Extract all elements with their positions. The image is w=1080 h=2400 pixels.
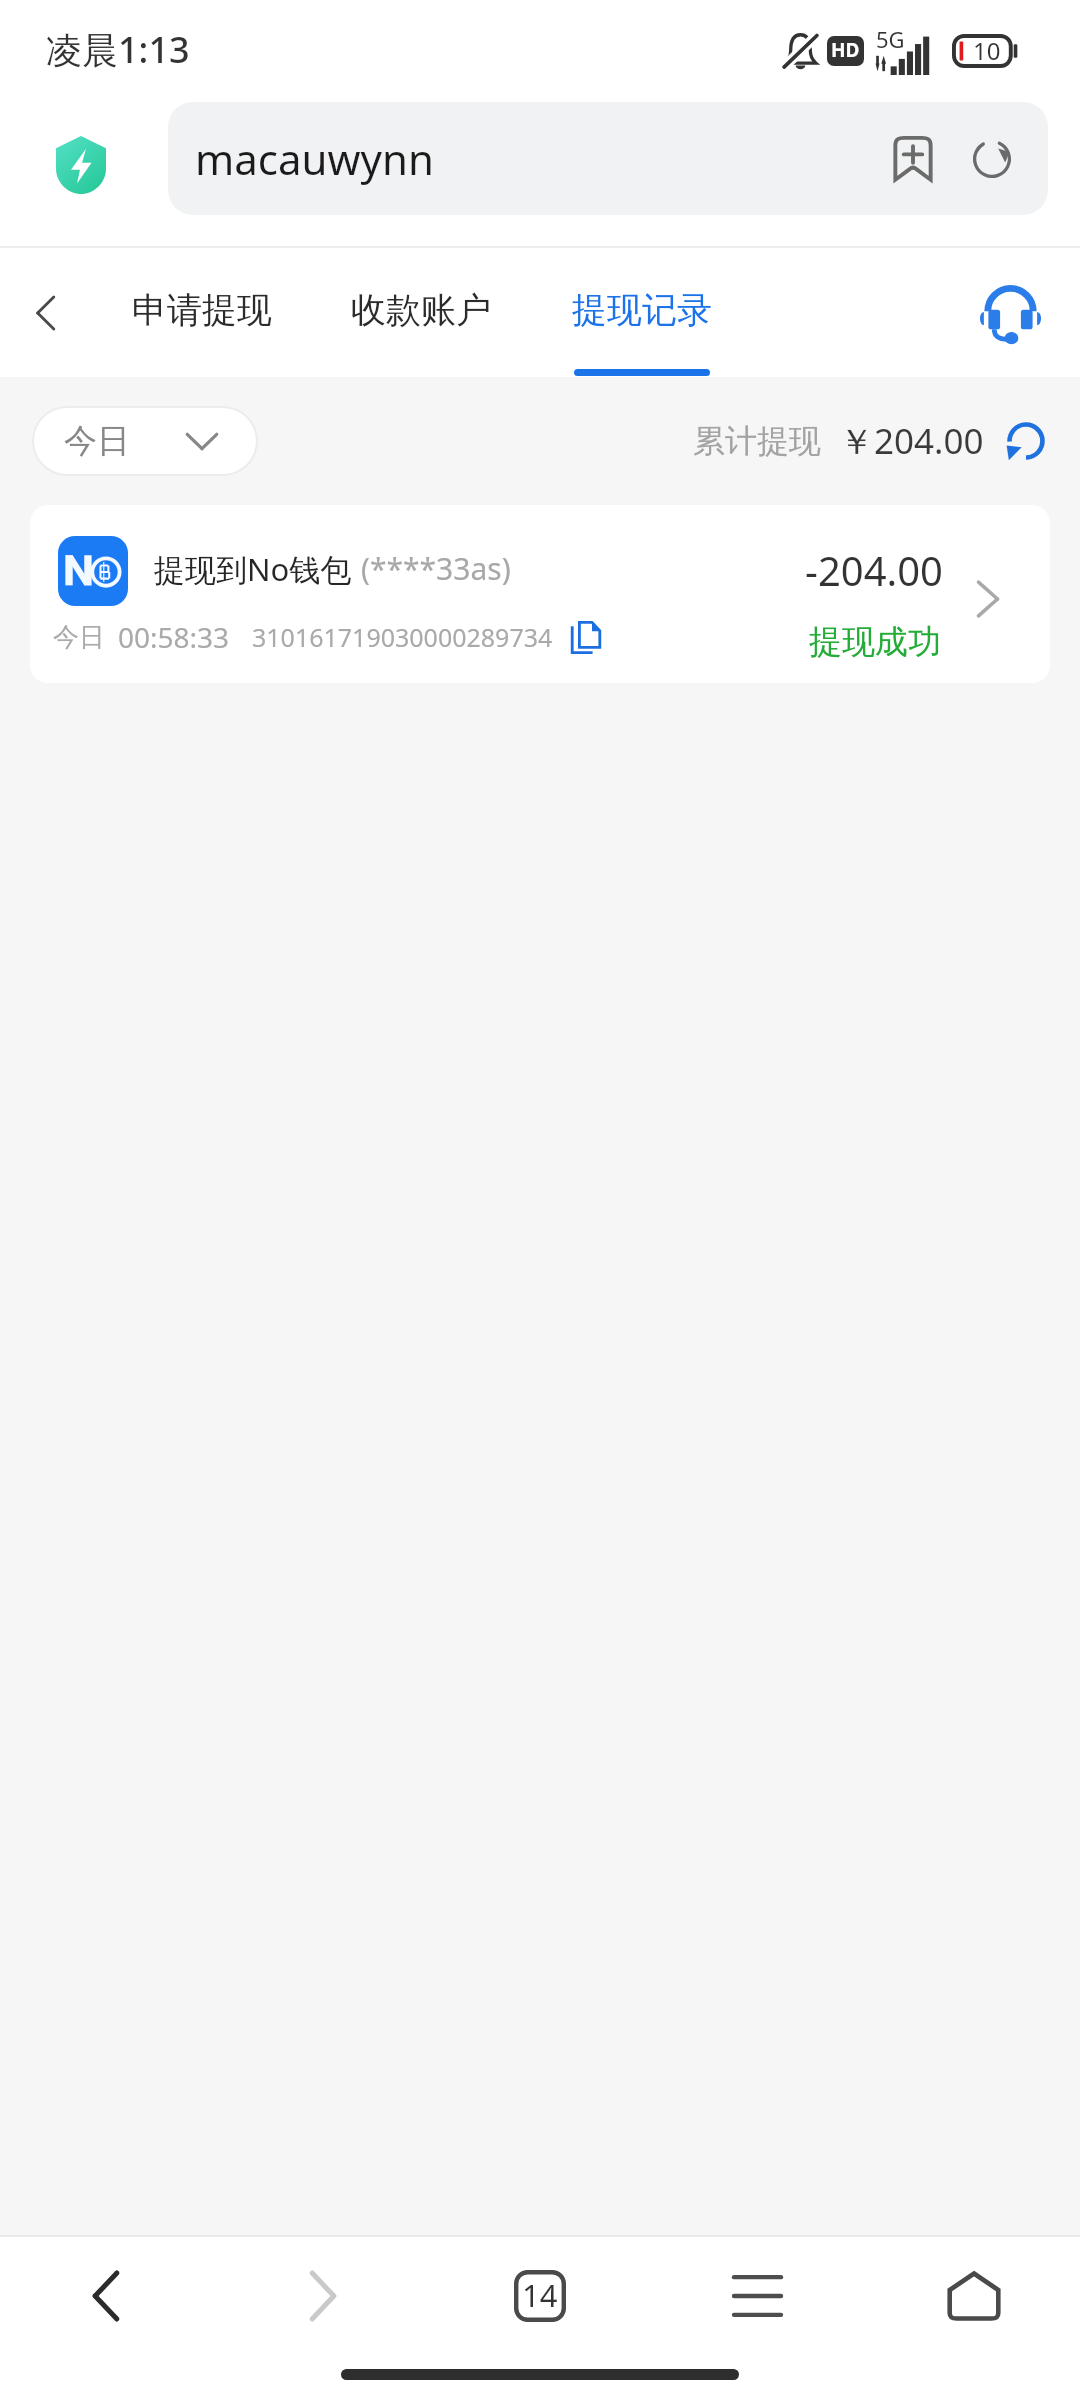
staticText: (****33as) <box>361 548 511 589</box>
staticText: 提现记录 <box>572 288 712 332</box>
staticText: 00:58:33 <box>118 618 230 656</box>
button[interactable]: Copy order number <box>567 618 605 656</box>
button[interactable]: Refresh page <box>955 122 1029 196</box>
button[interactable]: macauwynn <box>168 102 1048 215</box>
button[interactable]: Menu <box>677 2237 837 2355</box>
staticText: 申请提现 <box>132 288 272 332</box>
staticText: macauwynn <box>195 130 876 187</box>
button[interactable]: Back <box>26 2237 186 2355</box>
button[interactable]: Add bookmark <box>876 122 950 196</box>
button[interactable]: 提现到No钱包 <box>30 505 1050 683</box>
button[interactable]: Back <box>4 271 88 355</box>
staticText: 10 <box>973 34 1001 67</box>
button[interactable]: Home <box>894 2237 1054 2355</box>
staticText: 今日 <box>64 420 130 462</box>
staticText: -204.00 <box>805 543 943 597</box>
staticText: 今日 <box>53 621 105 654</box>
staticText: 5G <box>876 24 905 54</box>
staticText: 凌晨1:13 <box>46 25 190 74</box>
staticText: 累计提现 <box>693 421 821 461</box>
staticText: 14 <box>522 2274 558 2316</box>
button[interactable]: Forward <box>243 2237 403 2355</box>
staticText: HD <box>831 37 860 63</box>
button[interactable]: 收款账户 <box>326 248 516 377</box>
staticText: 310161719030000289734 <box>252 620 553 654</box>
button[interactable]: 申请提现 <box>107 248 297 377</box>
button[interactable]: 今日 <box>34 408 256 474</box>
staticText: ￥204.00 <box>839 417 984 465</box>
button[interactable]: Tabs <box>460 2237 620 2355</box>
button[interactable]: Refresh total <box>1002 417 1050 465</box>
button[interactable]: Customer service <box>960 263 1060 363</box>
button[interactable]: 提现记录 <box>547 248 737 377</box>
staticText: 收款账户 <box>351 288 491 332</box>
staticText: 提现成功 <box>809 621 941 663</box>
staticText: 提现到No钱包 <box>154 548 352 590</box>
